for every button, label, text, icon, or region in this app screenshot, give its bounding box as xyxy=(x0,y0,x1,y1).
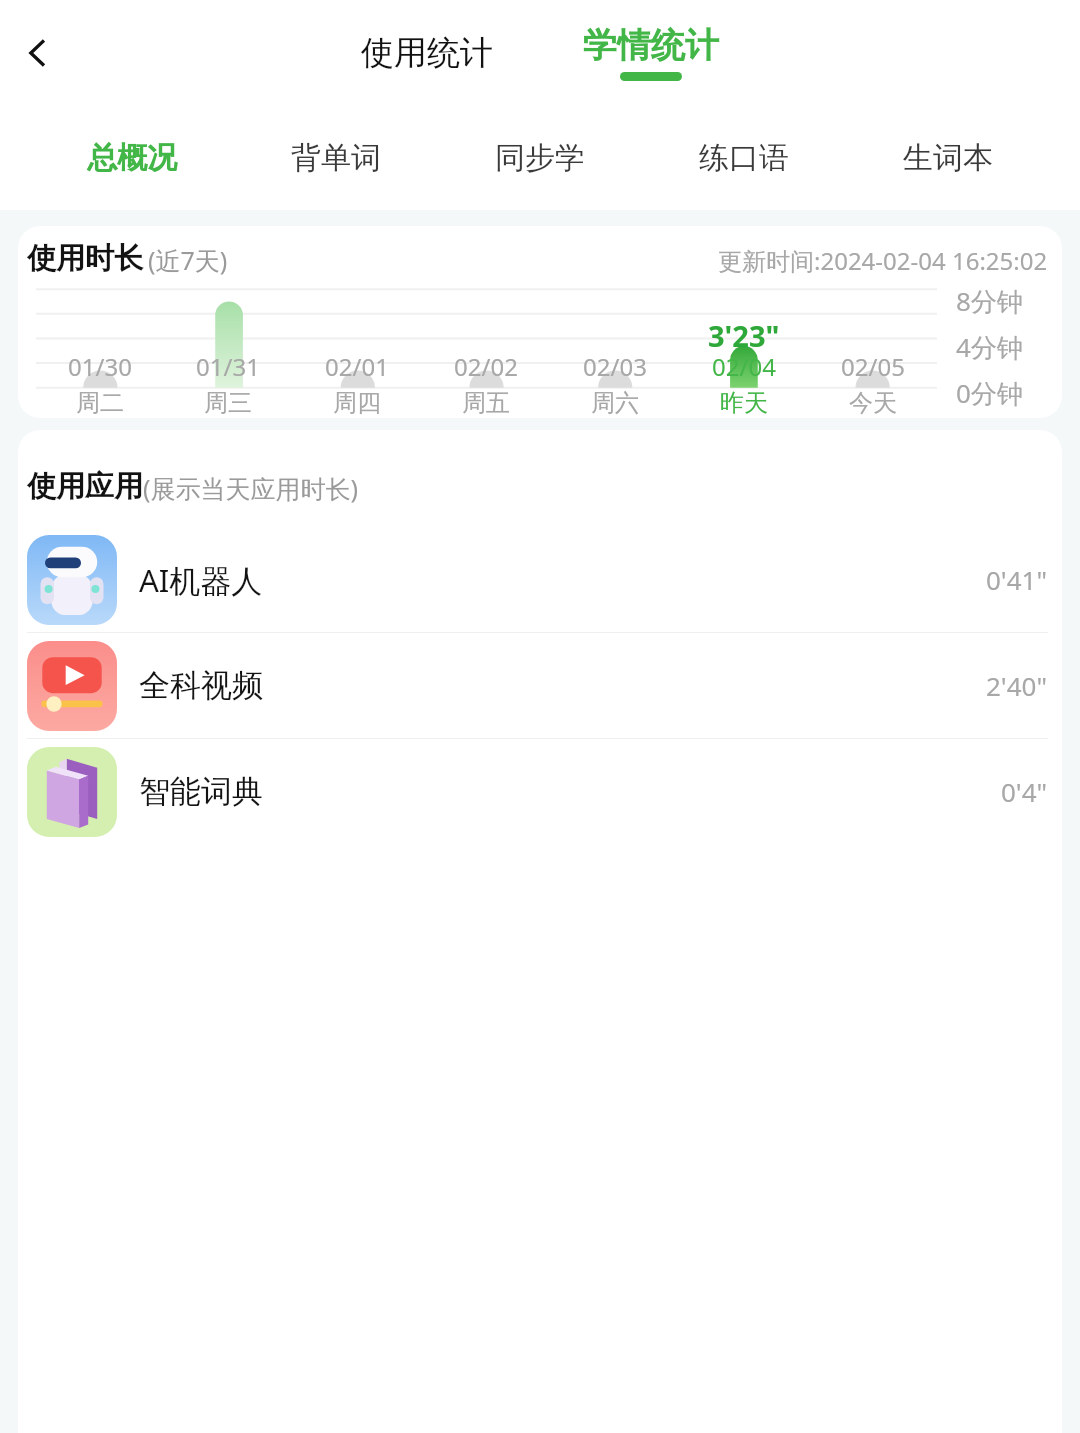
staticText: 3'23" xyxy=(708,316,780,355)
staticText: 使用应用 xyxy=(27,468,143,505)
staticText: AI机器人 xyxy=(139,559,263,601)
staticText: 4分钟 xyxy=(956,329,1023,365)
staticText: (展示当天应用时长) xyxy=(143,471,359,505)
button[interactable]: Back xyxy=(6,21,70,85)
staticText: 学情统计 xyxy=(583,24,719,67)
staticText: 生词本 xyxy=(903,139,993,177)
staticText: 8分钟 xyxy=(956,283,1023,319)
staticText: 01/31 xyxy=(196,350,260,383)
staticText: 使用时长 xyxy=(27,240,143,277)
staticText: 周二 xyxy=(76,388,124,418)
button[interactable]: 同步学 xyxy=(438,105,642,210)
staticText: 今天 xyxy=(849,388,897,418)
staticText: 智能词典 xyxy=(139,772,263,811)
button[interactable]: 学情统计 xyxy=(573,24,729,81)
staticText: 周三 xyxy=(204,388,252,418)
button[interactable]: 智能词典 xyxy=(18,739,1062,844)
staticText: 周六 xyxy=(591,388,639,418)
button[interactable]: 全科视频 xyxy=(18,633,1062,739)
staticText: 同步学 xyxy=(495,139,585,177)
staticText: 周四 xyxy=(333,388,381,418)
staticText: 更新时间:2024-02-04 16:25:02 xyxy=(718,244,1048,277)
staticText: (近7天) xyxy=(148,243,228,277)
button[interactable]: 总概况 xyxy=(30,105,234,210)
staticText: 周五 xyxy=(462,388,510,418)
staticText: 全科视频 xyxy=(139,666,263,705)
staticText: 0'41" xyxy=(986,562,1048,597)
staticText: 02/02 xyxy=(454,350,518,383)
staticText: 使用统计 xyxy=(361,32,493,74)
button[interactable]: AI机器人 xyxy=(18,527,1062,633)
button[interactable]: 使用统计 xyxy=(351,32,503,74)
staticText: 总概况 xyxy=(87,139,177,177)
staticText: 昨天 xyxy=(720,388,768,418)
staticText: 02/03 xyxy=(583,350,647,383)
button[interactable]: 背单词 xyxy=(234,105,438,210)
staticText: 02/01 xyxy=(325,350,389,383)
button[interactable]: 生词本 xyxy=(846,105,1050,210)
staticText: 练口语 xyxy=(699,139,789,177)
staticText: 02/04 xyxy=(712,350,776,383)
staticText: 背单词 xyxy=(291,139,381,177)
button[interactable]: 练口语 xyxy=(642,105,846,210)
staticText: 01/30 xyxy=(68,350,132,383)
staticText: 2'40" xyxy=(986,668,1048,703)
staticText: 02/05 xyxy=(841,350,905,383)
staticText: 0'4" xyxy=(1001,774,1048,809)
staticText: 0分钟 xyxy=(956,375,1023,411)
